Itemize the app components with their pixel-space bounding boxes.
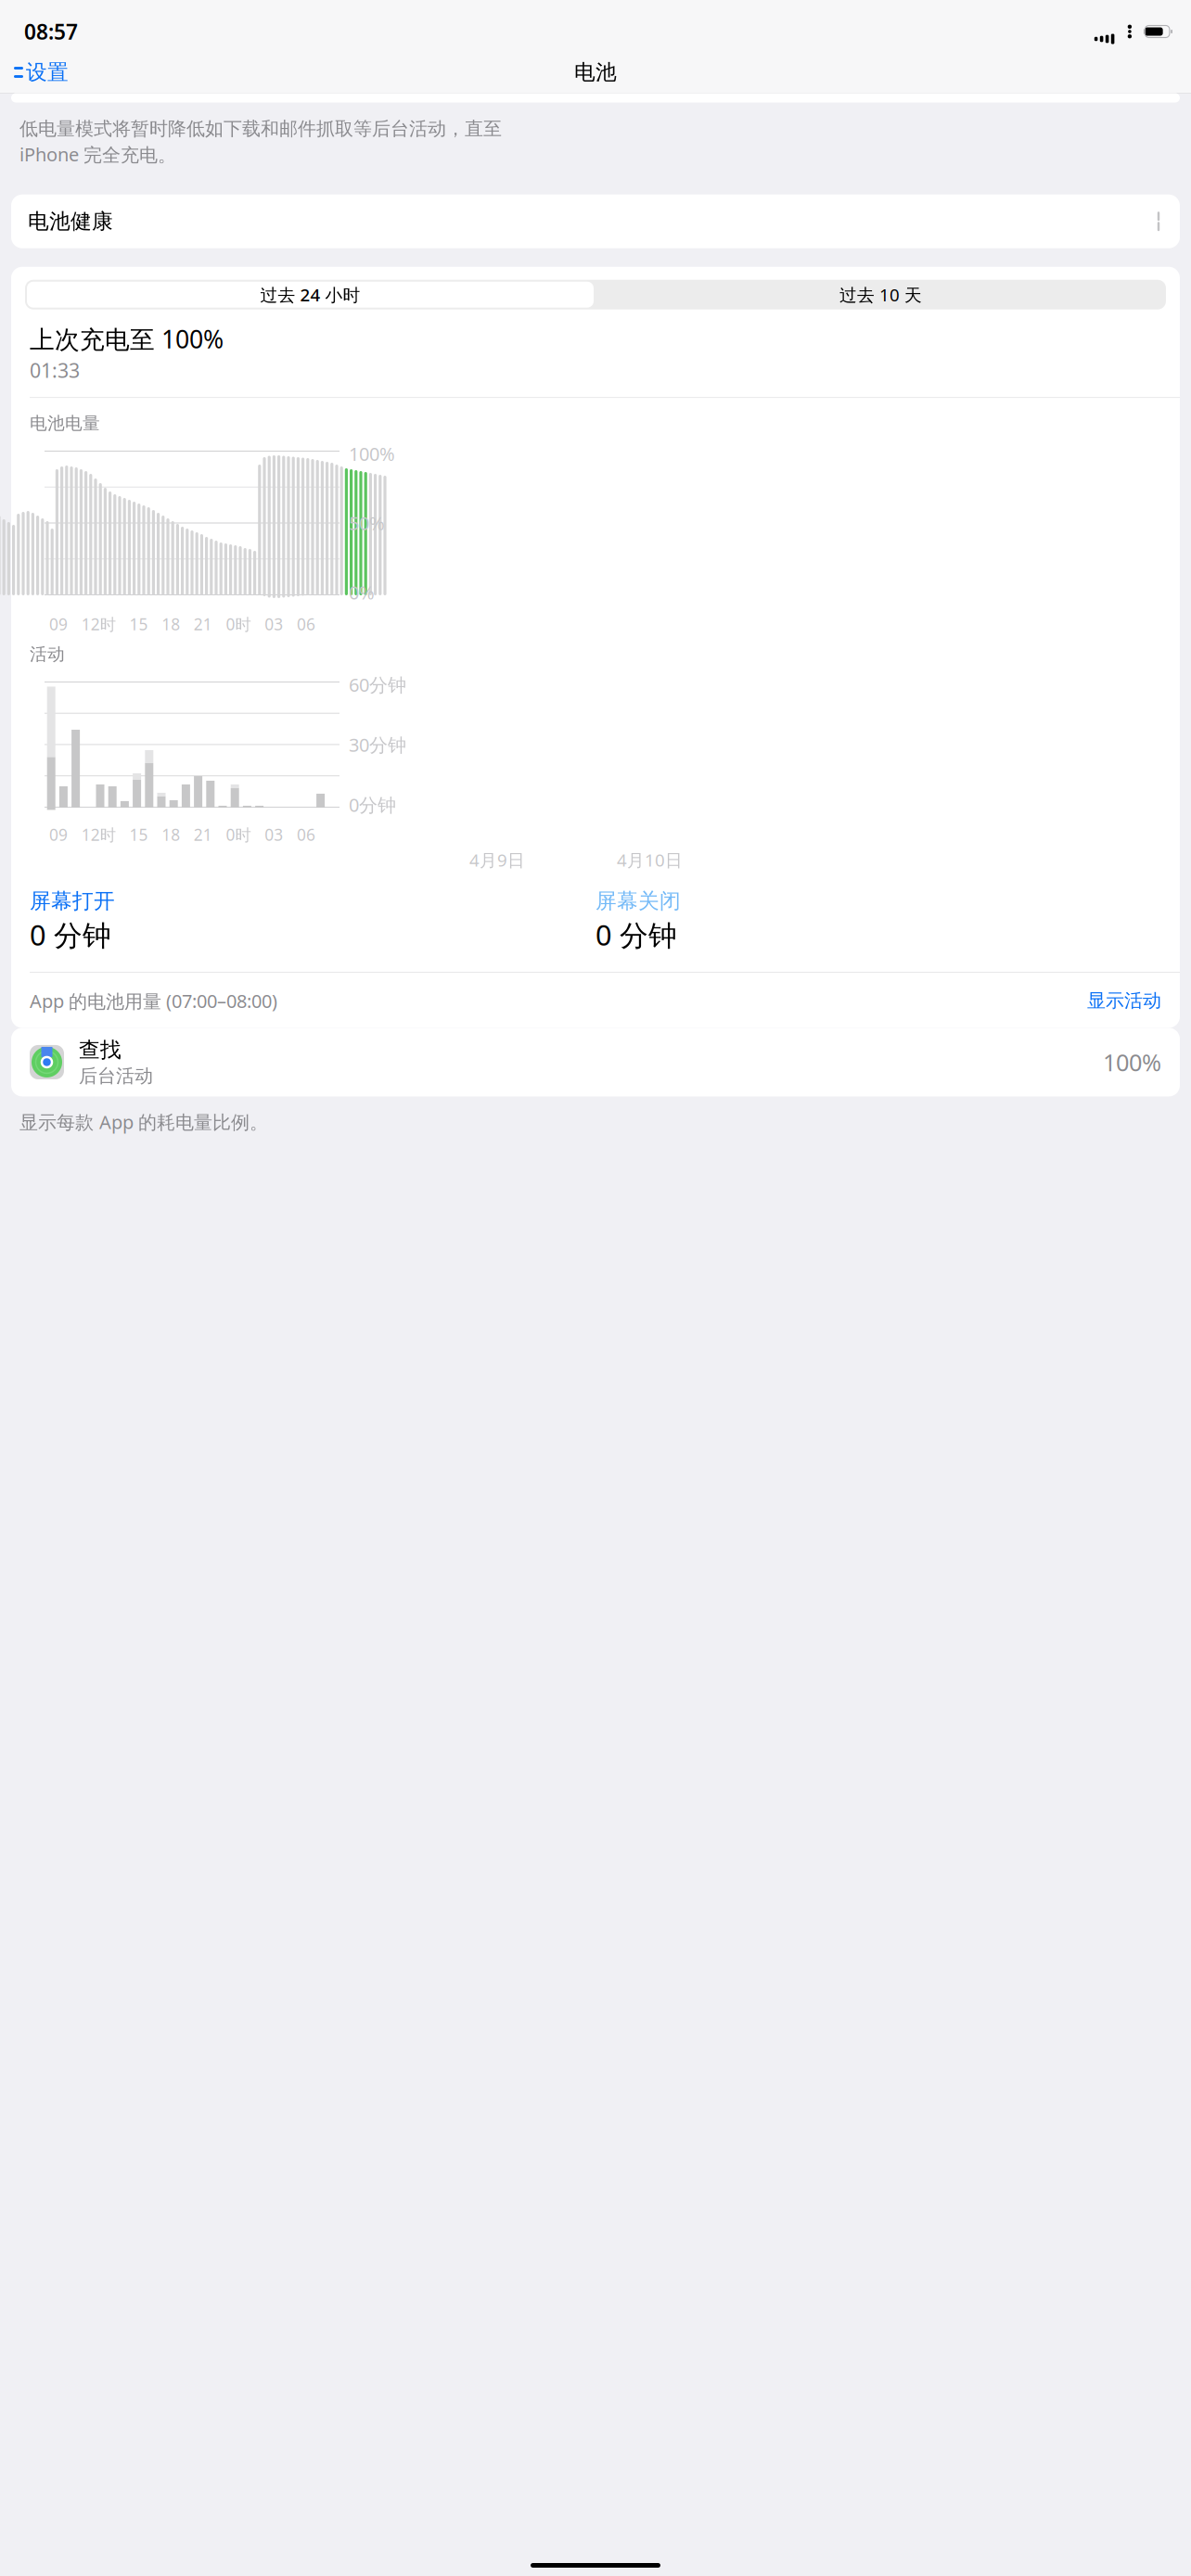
staticText: 过去 24 小时 bbox=[260, 283, 360, 306]
staticText: 09 bbox=[49, 824, 68, 845]
staticText: 01:33 bbox=[30, 357, 80, 383]
staticText: 屏幕打开 bbox=[30, 888, 115, 914]
staticText: App 的电池用量 (07:00–08:00) bbox=[30, 988, 277, 1013]
staticText: 08:57 bbox=[24, 18, 78, 45]
staticText: 100% bbox=[1103, 1047, 1161, 1078]
staticText: 15 bbox=[129, 613, 148, 635]
button[interactable]: 电池健康 bbox=[11, 194, 1180, 248]
staticText: 0分钟 bbox=[349, 792, 396, 817]
button[interactable]: 查找 bbox=[11, 1028, 1180, 1097]
staticText: 后台活动 bbox=[79, 1065, 153, 1087]
staticText: 03 bbox=[265, 613, 283, 635]
staticText: 低电量模式将暂时降低如下载和邮件抓取等后台活动，直至 bbox=[19, 117, 502, 140]
staticText: 06 bbox=[297, 613, 315, 635]
staticText: 0 分钟 bbox=[595, 916, 677, 954]
staticText: 上次充电至 100% bbox=[30, 322, 224, 355]
button[interactable]: 设置 bbox=[0, 50, 69, 94]
staticText: 0时 bbox=[226, 613, 251, 635]
staticText: iPhone 完全充电。 bbox=[19, 142, 176, 167]
staticText: 06 bbox=[297, 824, 315, 845]
staticText: 屏幕关闭 bbox=[595, 888, 681, 914]
staticText: 电池 bbox=[574, 59, 617, 85]
staticText: 03 bbox=[265, 824, 283, 845]
staticText: 30分钟 bbox=[349, 732, 406, 757]
staticText: 0时 bbox=[226, 824, 251, 845]
staticText: 12时 bbox=[81, 613, 116, 635]
staticText: 查找 bbox=[79, 1037, 122, 1063]
staticText: 21 bbox=[194, 613, 212, 635]
staticText: 12时 bbox=[81, 824, 116, 845]
staticText: 0% bbox=[349, 580, 375, 605]
staticText: 4月9日 bbox=[469, 848, 525, 871]
button[interactable]: 过去 10 天 bbox=[595, 280, 1166, 309]
staticText: 09 bbox=[49, 613, 68, 635]
staticText: 15 bbox=[129, 824, 148, 845]
staticText: 活动 bbox=[30, 644, 65, 665]
staticText: 过去 10 天 bbox=[839, 283, 922, 306]
staticText: 21 bbox=[194, 824, 212, 845]
staticText: 0 分钟 bbox=[30, 916, 111, 954]
staticText: 显示每款 App 的耗电量比例。 bbox=[19, 1109, 268, 1134]
staticText: 电池健康 bbox=[28, 208, 113, 234]
button[interactable]: 过去 24 小时 bbox=[25, 280, 595, 309]
staticText: 电池电量 bbox=[30, 413, 100, 434]
staticText: 显示活动 bbox=[1087, 989, 1161, 1012]
staticText: 50% bbox=[349, 511, 385, 535]
staticText: 设置 bbox=[26, 59, 69, 85]
button[interactable]: 显示活动 bbox=[1087, 985, 1161, 1017]
staticText: 18 bbox=[161, 824, 180, 845]
staticText: 100% bbox=[349, 441, 395, 466]
staticText: 18 bbox=[161, 613, 180, 635]
staticText: 4月10日 bbox=[617, 848, 683, 871]
staticText: 60分钟 bbox=[349, 672, 406, 697]
